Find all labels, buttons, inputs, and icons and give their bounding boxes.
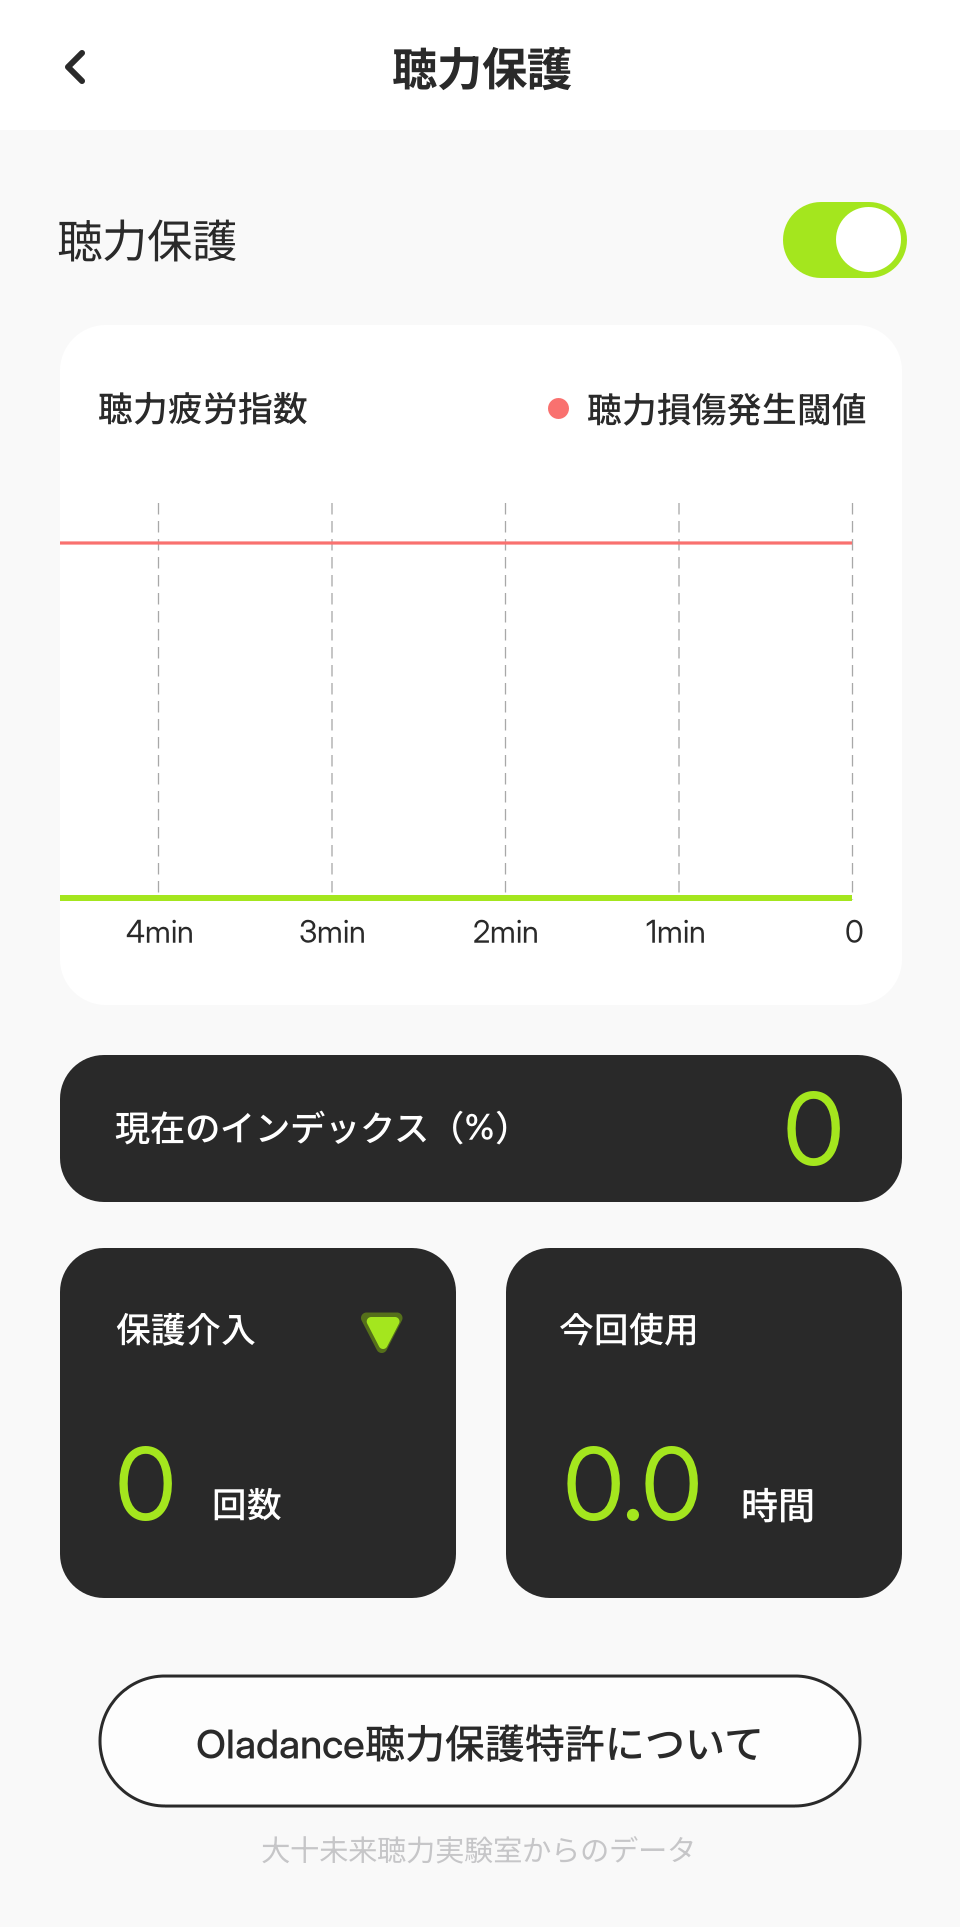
staticText: 現在のインデックス（%）	[115, 1100, 530, 1151]
staticText: 時間	[741, 1476, 815, 1530]
staticText: 聴力損傷発生閾値	[587, 382, 867, 432]
staticText: 0	[845, 913, 864, 950]
staticText: 回数	[212, 1477, 282, 1527]
staticText: 聴力保護	[57, 205, 237, 271]
staticText: 2min	[473, 913, 539, 950]
staticText: 0	[115, 1423, 176, 1544]
staticText: 大十未来聴力実験室からのデータ	[261, 1827, 696, 1869]
staticText: 3min	[299, 913, 366, 950]
staticText: 聴力保護	[392, 33, 572, 99]
button[interactable]: 聴力保護	[0, 130, 960, 325]
staticText: Oladance聴力保護特許について	[196, 1712, 764, 1770]
staticText: 1min	[646, 913, 706, 950]
staticText: 0	[783, 1068, 844, 1189]
staticText: 聴力疲労指数	[98, 381, 308, 431]
staticText: 今回使用	[559, 1302, 699, 1352]
button[interactable]: 戻る	[37, 29, 113, 105]
staticText: 保護介入	[116, 1302, 256, 1352]
staticText: 0.0	[563, 1423, 702, 1544]
staticText: 4min	[126, 913, 194, 950]
button[interactable]: Oladance聴力保護特許について	[100, 1676, 860, 1806]
